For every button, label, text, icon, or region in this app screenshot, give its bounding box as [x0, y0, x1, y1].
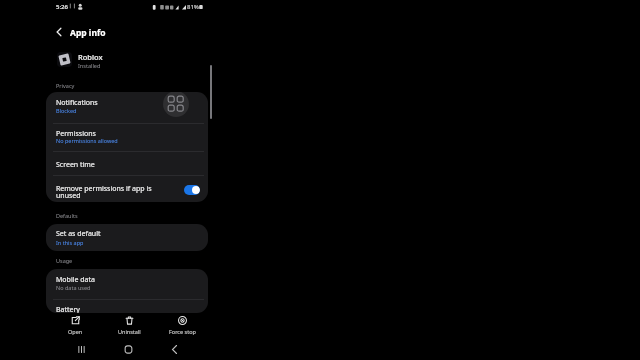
button[interactable]: Recent apps — [65, 338, 97, 360]
staticText: Battery — [56, 305, 80, 313]
staticText: 5:26 — [56, 3, 68, 11]
staticText: No data used — [56, 284, 91, 291]
button[interactable]: Toggle remove permissions — [184, 185, 200, 195]
staticText: Screen time — [56, 160, 95, 170]
staticText: Open — [68, 328, 83, 335]
staticText: Uninstall — [118, 328, 141, 335]
button[interactable]: Mobile data — [46, 269, 208, 299]
staticText: 81% — [187, 3, 199, 11]
button[interactable]: Permissions — [46, 123, 208, 151]
button[interactable]: Back — [158, 338, 190, 360]
staticText: No permissions allowed — [56, 137, 118, 144]
staticText: Mobile data — [56, 275, 95, 285]
staticText: In this app — [56, 239, 84, 246]
staticText: Installed — [78, 62, 101, 69]
staticText: Set as default — [56, 229, 101, 239]
button[interactable]: Force stop — [162, 313, 202, 338]
staticText: Usage — [56, 257, 73, 264]
staticText: Defaults — [56, 212, 78, 219]
staticText: Force stop — [169, 328, 196, 335]
button[interactable]: Notifications — [46, 92, 208, 123]
button[interactable]: Open — [55, 313, 95, 338]
button[interactable]: Uninstall — [109, 313, 149, 338]
button[interactable]: Battery — [46, 299, 208, 313]
staticText: Notifications — [56, 98, 98, 108]
button[interactable]: Home — [112, 338, 144, 360]
staticText: Roblox — [78, 52, 103, 62]
staticText: Blocked — [56, 107, 77, 114]
staticText: Remove permissions if app is — [56, 184, 152, 194]
button[interactable]: Navigate up — [50, 23, 68, 41]
button[interactable]: Remove permissions if app is — [46, 175, 208, 202]
button[interactable]: Set as default — [46, 224, 208, 251]
staticText: Privacy — [56, 82, 75, 89]
staticText: Permissions — [56, 129, 96, 139]
staticText: App info — [70, 27, 106, 39]
button[interactable]: Screen time — [46, 151, 208, 175]
staticText: unused — [56, 191, 81, 201]
